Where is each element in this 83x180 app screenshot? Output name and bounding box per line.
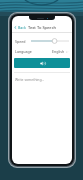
button[interactable]: English: [51, 48, 69, 55]
staticText: Language: [15, 49, 32, 54]
staticText: English: [52, 49, 65, 54]
staticText: Write something...: [15, 77, 45, 82]
button[interactable]: Write something...: [15, 76, 69, 83]
staticText: Back: [18, 25, 26, 30]
staticText: Speed: [15, 39, 26, 44]
button[interactable]: Back: [12, 24, 28, 31]
button[interactable]: Speak: [14, 58, 70, 68]
button[interactable]: [31, 37, 69, 45]
staticText: Text To Speech: [28, 25, 57, 30]
